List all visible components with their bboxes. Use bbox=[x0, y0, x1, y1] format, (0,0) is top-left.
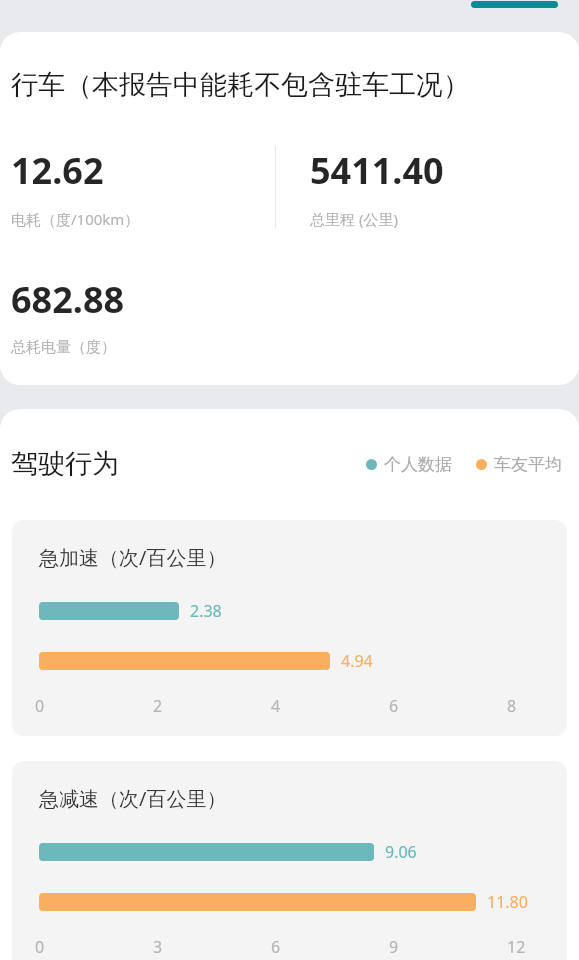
staticText: 11.80 bbox=[487, 891, 528, 913]
staticText: 4.94 bbox=[341, 650, 373, 672]
staticText: 总里程 (公里) bbox=[310, 209, 398, 229]
staticText: 8 bbox=[507, 695, 517, 716]
staticText: 9.06 bbox=[385, 841, 417, 863]
staticText: 6 bbox=[389, 695, 399, 716]
staticText: 电耗（度/100km） bbox=[11, 209, 140, 229]
staticText: 12 bbox=[507, 936, 526, 957]
staticText: 急减速（次/百公里） bbox=[39, 785, 227, 812]
staticText: 驾驶行为 bbox=[11, 447, 119, 481]
staticText: 9 bbox=[389, 936, 399, 957]
button[interactable]: 个人数据 bbox=[366, 454, 452, 475]
staticText: 5411.40 bbox=[310, 146, 444, 195]
staticText: 个人数据 bbox=[384, 454, 452, 475]
button[interactable]: Selected tab indicator bbox=[471, 1, 558, 8]
staticText: 2 bbox=[153, 695, 163, 716]
button[interactable]: 车友平均 bbox=[476, 454, 562, 475]
staticText: 0 bbox=[35, 695, 45, 716]
staticText: 车友平均 bbox=[494, 454, 562, 475]
staticText: 6 bbox=[271, 936, 281, 957]
button[interactable]: 急减速（次/百公里） bbox=[12, 761, 567, 960]
staticText: 0 bbox=[35, 936, 45, 957]
staticText: 行车（本报告中能耗不包含驻车工况） bbox=[11, 68, 470, 102]
staticText: 3 bbox=[153, 936, 163, 957]
staticText: 急加速（次/百公里） bbox=[39, 544, 227, 571]
button[interactable]: 急加速（次/百公里） bbox=[12, 520, 567, 736]
staticText: 682.88 bbox=[11, 275, 125, 324]
staticText: 总耗电量（度） bbox=[11, 338, 116, 357]
staticText: 4 bbox=[271, 695, 281, 716]
staticText: 2.38 bbox=[190, 600, 222, 622]
staticText: 12.62 bbox=[11, 146, 104, 195]
